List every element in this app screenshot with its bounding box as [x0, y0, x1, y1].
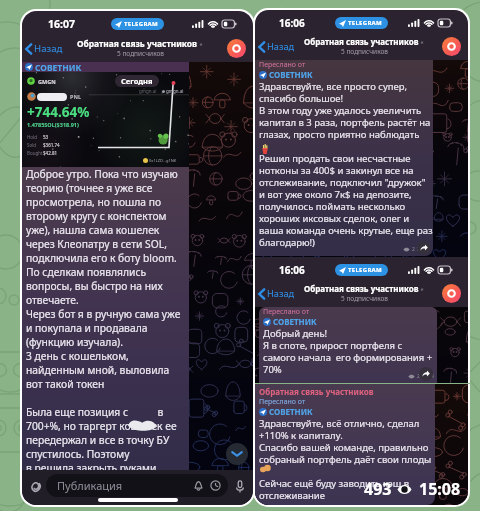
staticText: нотконы за 400$ и закинул все на — [259, 164, 414, 176]
staticText: через Клеопатру в сети SOL, — [26, 237, 167, 251]
staticText: ваша команда очень крутые, еще раз — [259, 224, 433, 236]
staticText: второму кругу с конспектом — [26, 209, 167, 223]
button[interactable]: Назад — [255, 35, 301, 58]
staticText: Решил продать свои несчастные — [259, 152, 411, 164]
staticText: СОВЕТНИК — [273, 316, 317, 327]
button[interactable]: Channel avatar — [227, 39, 246, 58]
staticText: +110% к капиталу. — [259, 429, 343, 441]
staticText: « — [198, 40, 203, 48]
button[interactable]: Назад — [255, 282, 301, 305]
staticText: глазах, просто приятно наблюдать — [259, 128, 420, 140]
staticText: найденным мной, выловила — [26, 363, 170, 377]
staticText: Спасибо вашей команде, правильно — [259, 441, 429, 453]
staticText: 70% — [263, 363, 282, 375]
staticText: 2 16:04 — [412, 246, 429, 253]
staticText: 16:07 — [48, 17, 75, 31]
staticText: TELEGRAM — [348, 19, 383, 27]
button[interactable]: Назад — [22, 37, 69, 60]
button[interactable]: Публикация — [46, 474, 228, 497]
button[interactable]: Scroll to bottom — [226, 443, 248, 465]
staticText: 16:06 — [279, 263, 305, 277]
staticText: капитал в 3 раза, портфель растёт на — [259, 116, 431, 128]
staticText: Сегодня — [121, 76, 153, 86]
staticText: (функцию изучала). — [26, 335, 123, 349]
staticText: хороших иксовых сделок, олег и — [259, 212, 410, 224]
staticText: 0x1LZD...g1NK — [149, 158, 177, 163]
staticText: 16:06 — [279, 16, 305, 30]
staticText: Доброе утро. Пока что изучаю — [26, 167, 178, 181]
staticText: Я в споте, прирост портфеля с — [263, 339, 403, 351]
staticText: самого начала его формирования + — [263, 351, 433, 363]
staticText: вот такой токен — [26, 377, 105, 391]
staticText: передержал и все в точку БУ — [26, 433, 170, 447]
staticText: Sold — [27, 142, 43, 148]
staticText: Обратная связь участников — [304, 283, 419, 294]
staticText: 5 подписчиков — [117, 49, 164, 58]
staticText: Переслано от — [263, 307, 310, 316]
staticText: 493 — [364, 478, 392, 500]
staticText: $361.74 — [43, 142, 60, 148]
staticText: Обратная связь участников — [259, 386, 374, 397]
staticText: благодарю!) — [259, 236, 315, 248]
staticText: Добрый день! — [263, 327, 328, 339]
staticText: 53 — [43, 134, 49, 140]
staticText: Bought — [27, 150, 43, 156]
button[interactable]: Attach file — [26, 477, 44, 495]
staticText: и покупала и продавала — [26, 321, 148, 335]
staticText: вопросы, вы быстро на них — [26, 279, 163, 293]
staticText: По сделкам появлялись — [26, 265, 147, 279]
staticText: Обратная связь участников — [304, 36, 419, 47]
staticText: 1.4785SOL($318.91) — [27, 121, 79, 128]
staticText: 700+%, но таргерт кошелек ее — [26, 419, 177, 433]
staticText: отвечаете. — [26, 293, 79, 307]
staticText: 3 день с кошельком, — [26, 349, 129, 363]
staticText: 5 подписчиков — [341, 294, 388, 303]
staticText: Через бот я в ручную сама уже — [26, 307, 181, 321]
staticText: Была еще позиция с в — [26, 405, 164, 419]
staticText: Hold — [27, 134, 43, 140]
staticText: подключила его к боту bloom. — [26, 251, 177, 265]
staticText: СОВЕТНИК — [269, 406, 313, 417]
staticText: gmgn.ai — [139, 88, 157, 94]
staticText: 5 подписчиков — [341, 47, 388, 56]
staticText: Публикация — [57, 478, 123, 493]
staticText: отслеживание, подключил "дружок" — [259, 176, 426, 188]
staticText: Здравствуйте, всё отлично, сделал — [259, 417, 420, 429]
staticText: 15:08 — [419, 478, 461, 500]
staticText: « — [419, 285, 424, 293]
staticText: уже), нашла сама кошелек — [26, 223, 160, 237]
staticText: TELEGRAM — [124, 20, 159, 28]
staticText: в решила закрыть руками. — [26, 461, 160, 470]
staticText: получилось поймать несколько — [259, 200, 406, 212]
staticText: 2 16:04 — [417, 373, 434, 380]
staticText: Назад — [34, 42, 63, 55]
button[interactable]: Forward — [417, 241, 431, 255]
staticText: СОВЕТНИК — [269, 69, 313, 80]
staticText: Переслано от — [259, 60, 306, 69]
staticText: +744.64% — [27, 103, 90, 121]
staticText: Назад — [267, 40, 295, 53]
staticText: gmgn.ai — [166, 88, 184, 94]
staticText: GMGN — [38, 78, 56, 85]
staticText: Переслано от — [259, 397, 306, 406]
staticText: $42.81 — [43, 150, 58, 156]
staticText: В этом году уже удалось увеличить — [259, 104, 422, 116]
button[interactable]: Channel avatar — [442, 37, 461, 56]
staticText: PNL — [70, 93, 81, 100]
staticText: Обратная связь участников — [77, 38, 198, 49]
staticText: спасибо большое! — [259, 92, 344, 104]
staticText: отслеживание — [259, 489, 325, 501]
staticText: теорию (точнее я уже все — [26, 181, 153, 195]
staticText: TELEGRAM — [348, 266, 383, 274]
staticText: спустилось. Поэтому — [26, 447, 130, 461]
staticText: Здравствуйте, все просто супер, — [259, 80, 408, 92]
button[interactable]: Forward — [419, 367, 433, 381]
staticText: « — [419, 38, 424, 46]
staticText: и вот уже около 7к$ на депозите, — [259, 188, 412, 200]
staticText: Сейчас ещё буду заводить кэш в — [259, 477, 410, 489]
button[interactable]: Channel avatar — [442, 284, 461, 303]
staticText: СОВЕТНИК — [35, 62, 82, 72]
staticText: просмотрела, но пошла по — [26, 195, 162, 209]
button[interactable]: Record voice message — [231, 477, 249, 495]
staticText: собраный портфель даёт свои плоды — [259, 453, 432, 465]
